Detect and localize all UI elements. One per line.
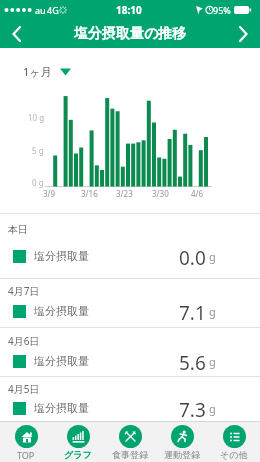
staticText: 塩分摂取量 xyxy=(34,401,89,415)
staticText: 3/30 xyxy=(152,188,169,199)
staticText: 食事登録 xyxy=(112,449,148,460)
staticText: 塩分摂取量 xyxy=(34,354,89,368)
staticText: 塩分摂取量の推移 xyxy=(74,25,187,43)
staticText: 3/23 xyxy=(116,188,133,199)
button[interactable]: 塩分摂取量 xyxy=(0,398,260,418)
staticText: 4/6 xyxy=(191,188,204,199)
staticText: 運動登録 xyxy=(164,449,200,460)
staticText: g xyxy=(209,354,216,369)
staticText: au xyxy=(35,4,46,16)
staticText: g xyxy=(209,249,216,264)
button[interactable]: 塩分摂取量 xyxy=(0,301,260,321)
staticText: g xyxy=(209,401,216,416)
staticText: 本日 xyxy=(8,223,28,236)
button[interactable]: TOP xyxy=(0,422,52,462)
staticText: その他 xyxy=(220,449,248,460)
staticText: TOP xyxy=(17,449,35,461)
staticText: 0 g xyxy=(32,177,44,188)
button[interactable]: その他 xyxy=(208,422,260,462)
staticText: 3/9 xyxy=(43,188,56,199)
staticText: 10 g xyxy=(28,112,45,123)
staticText: 5.6 xyxy=(179,350,206,370)
staticText: 5 g xyxy=(32,145,44,156)
staticText: 4月7日 xyxy=(8,284,40,298)
staticText: 4G xyxy=(47,4,59,16)
staticText: g xyxy=(209,304,216,319)
staticText: 7.3 xyxy=(179,397,206,417)
button[interactable]: 塩分摂取量 xyxy=(0,246,260,266)
staticText: 4月6日 xyxy=(8,334,40,348)
button[interactable] xyxy=(0,20,34,48)
staticText: グラフ xyxy=(64,449,92,460)
staticText: 3/16 xyxy=(81,188,98,199)
staticText: 95% xyxy=(213,4,231,16)
staticText: 18:10 xyxy=(116,3,142,17)
staticText: 0.0 xyxy=(179,245,206,265)
staticText: 塩分摂取量 xyxy=(34,304,89,318)
button[interactable]: 運動登録 xyxy=(156,422,208,462)
staticText: 7.1 xyxy=(179,300,206,320)
button[interactable]: 食事登録 xyxy=(104,422,156,462)
staticText: 塩分摂取量 xyxy=(34,249,89,263)
button[interactable] xyxy=(226,20,260,48)
button[interactable]: グラフ xyxy=(52,422,104,462)
button[interactable]: 1ヶ月 xyxy=(23,64,71,79)
staticText: 1ヶ月 xyxy=(23,64,52,79)
staticText: 4月5日 xyxy=(8,382,40,396)
button[interactable]: 塩分摂取量 xyxy=(0,351,260,371)
